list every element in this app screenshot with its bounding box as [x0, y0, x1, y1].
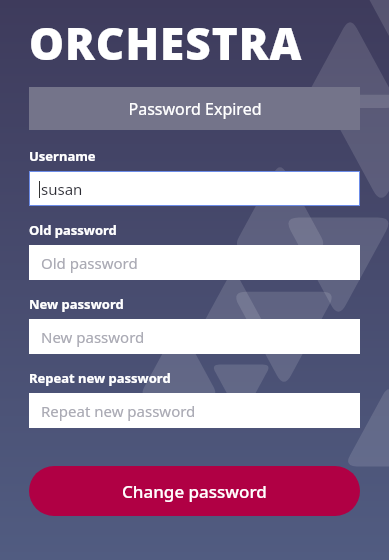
staticText: Repeat new password — [41, 401, 196, 421]
staticText: Repeat new password — [29, 369, 171, 387]
staticText: Old password — [29, 221, 117, 239]
staticText: susan — [41, 179, 83, 199]
button[interactable]: Change password — [29, 466, 360, 516]
staticText: Old password — [41, 253, 138, 273]
button[interactable]: susan — [30, 172, 359, 205]
button[interactable]: New password — [29, 319, 360, 354]
button[interactable]: Password Expired — [29, 87, 360, 130]
staticText: Change password — [122, 480, 267, 503]
staticText: Username — [29, 147, 96, 165]
staticText: New password — [41, 327, 145, 347]
button[interactable]: Old password — [29, 245, 360, 280]
staticText: New password — [29, 295, 124, 313]
staticText: ORCHESTRA — [29, 13, 303, 73]
button[interactable]: Repeat new password — [29, 393, 360, 428]
staticText: Password Expired — [128, 98, 262, 120]
